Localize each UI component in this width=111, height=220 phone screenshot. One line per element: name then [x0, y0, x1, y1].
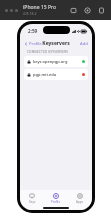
button[interactable] [5, 9, 8, 12]
button[interactable]: Screenshot [70, 7, 77, 14]
staticText: CONNECTED KEYSERVERS [27, 50, 69, 54]
button[interactable] [15, 9, 18, 12]
button[interactable] [10, 9, 13, 12]
staticText: keys.openpgp.org [33, 59, 82, 64]
staticText: Profile [29, 41, 42, 47]
staticText: Add [80, 41, 88, 47]
staticText: Keyservers [42, 40, 70, 47]
staticText: Profile [51, 200, 61, 204]
button[interactable]: Profile [44, 190, 68, 205]
button[interactable]: pgp.mit.edu [24, 69, 88, 80]
staticText: iPhone 15 Pro [23, 4, 57, 11]
button[interactable]: Apps [68, 190, 92, 205]
button[interactable]: keys.openpgp.org [24, 56, 88, 67]
staticText: Apps [76, 200, 84, 204]
button[interactable]: Keys [20, 190, 44, 205]
button[interactable]: Record screen [84, 7, 91, 14]
staticText: pgp.mit.edu [33, 72, 82, 77]
button[interactable]: Profile [22, 40, 44, 48]
button[interactable]: Add [78, 40, 90, 48]
staticText: 2:59 [28, 28, 38, 34]
button[interactable]: Rotate device [98, 7, 105, 14]
staticText: Keys [29, 200, 36, 204]
staticText: iOS 18.2 [23, 11, 37, 16]
